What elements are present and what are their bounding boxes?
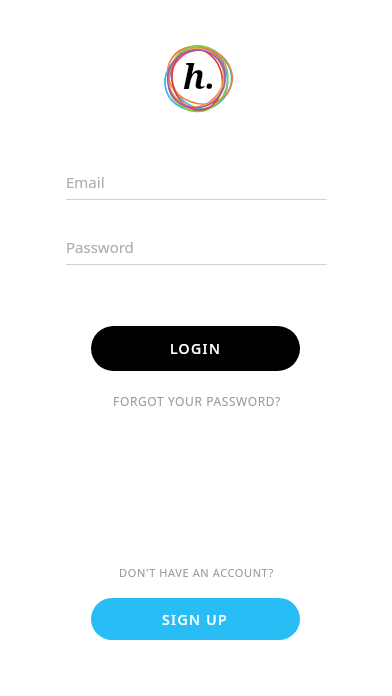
button[interactable]: Password (66, 234, 327, 265)
button[interactable]: SIGN UP (91, 598, 300, 640)
staticText: DON'T HAVE AN ACCOUNT? (119, 565, 274, 580)
staticText: FORGOT YOUR PASSWORD? (113, 393, 281, 409)
staticText: LOGIN (170, 339, 222, 358)
other: Logo (161, 36, 235, 118)
button[interactable]: Email (66, 169, 327, 200)
staticText: SIGN UP (162, 610, 229, 629)
button[interactable]: FORGOT YOUR PASSWORD? (66, 390, 327, 412)
staticText: Password (66, 237, 134, 257)
staticText: h. (183, 53, 216, 99)
button[interactable]: LOGIN (91, 326, 300, 371)
staticText: Email (66, 172, 105, 192)
